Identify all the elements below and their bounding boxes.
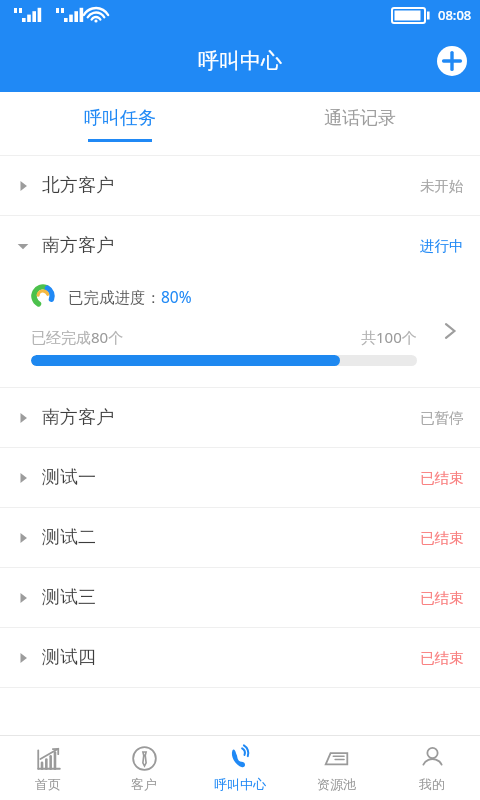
staticText: 南方客户	[42, 406, 114, 429]
staticText: 测试二	[42, 526, 96, 549]
button[interactable]: 北方客户	[0, 156, 480, 215]
staticText: 已结束	[420, 529, 464, 547]
button[interactable]: 首页	[0, 736, 96, 800]
staticText: 南方客户	[42, 234, 114, 257]
button[interactable]: 呼叫任务	[0, 92, 240, 156]
staticText: 已完成进度：80%	[68, 286, 192, 307]
button[interactable]: 已完成进度：80%	[0, 275, 480, 387]
staticText: 测试四	[42, 646, 96, 669]
staticText: 已暂停	[420, 409, 464, 427]
staticText: 呼叫中心	[214, 776, 266, 792]
staticText: 共100个	[361, 327, 417, 347]
staticText: 北方客户	[42, 174, 114, 197]
button[interactable]: 南方客户	[0, 388, 480, 447]
staticText: 客户	[131, 776, 157, 792]
staticText: 未开始	[420, 177, 464, 195]
button[interactable]: 测试三	[0, 568, 480, 627]
button[interactable]: 测试一	[0, 448, 480, 507]
button[interactable]: 客户	[96, 736, 192, 800]
button[interactable]: Add	[437, 46, 467, 76]
staticText: 我的	[419, 776, 445, 792]
staticText: 首页	[35, 776, 61, 792]
staticText: 已结束	[420, 589, 464, 607]
staticText: 已经完成80个	[31, 327, 124, 347]
staticText: 通话记录	[324, 107, 396, 130]
button[interactable]: 通话记录	[240, 92, 480, 156]
button[interactable]: 资源池	[288, 736, 384, 800]
button[interactable]: 测试四	[0, 628, 480, 687]
button[interactable]: 南方客户	[0, 216, 480, 275]
staticText: 资源池	[317, 776, 356, 792]
staticText: 08:08	[438, 6, 472, 24]
staticText: 已结束	[420, 649, 464, 667]
button[interactable]: 我的	[384, 736, 480, 800]
staticText: 进行中	[420, 237, 464, 255]
staticText: 测试一	[42, 466, 96, 489]
staticText: 测试三	[42, 586, 96, 609]
button[interactable]: 测试二	[0, 508, 480, 567]
button[interactable]: 呼叫中心	[192, 736, 288, 800]
staticText: 呼叫中心	[198, 48, 282, 74]
staticText: 呼叫任务	[84, 107, 156, 130]
staticText: 已结束	[420, 469, 464, 487]
